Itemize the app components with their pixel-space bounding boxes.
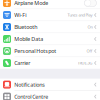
staticText: On [87, 24, 92, 30]
button[interactable]: Wi-Fi [0, 9, 100, 21]
staticText: Carrier [14, 59, 30, 67]
button[interactable]: Personal Hotspot [0, 45, 100, 57]
staticText: Personal Hotspot [14, 47, 56, 55]
staticText: Off [86, 48, 92, 54]
staticText: TRUE-3G [77, 60, 92, 66]
button[interactable]: Carrier [0, 57, 100, 69]
button[interactable]: Bluetooth [0, 21, 100, 33]
staticText: Mobile Data [14, 35, 43, 43]
button[interactable]: Notifications [0, 79, 100, 90]
staticText: Wi-Fi [14, 11, 26, 19]
staticText: Airplane Mode [14, 0, 48, 7]
button[interactable]: Control Centre [0, 91, 100, 100]
staticText: Bluetooth [14, 23, 37, 31]
staticText: Control Centre [14, 93, 48, 100]
staticText: Tunes and Play [67, 12, 92, 18]
button[interactable]: Mobile Data [0, 33, 100, 45]
staticText: Notifications [14, 81, 45, 88]
button[interactable]: Airplane Mode [0, 0, 100, 9]
